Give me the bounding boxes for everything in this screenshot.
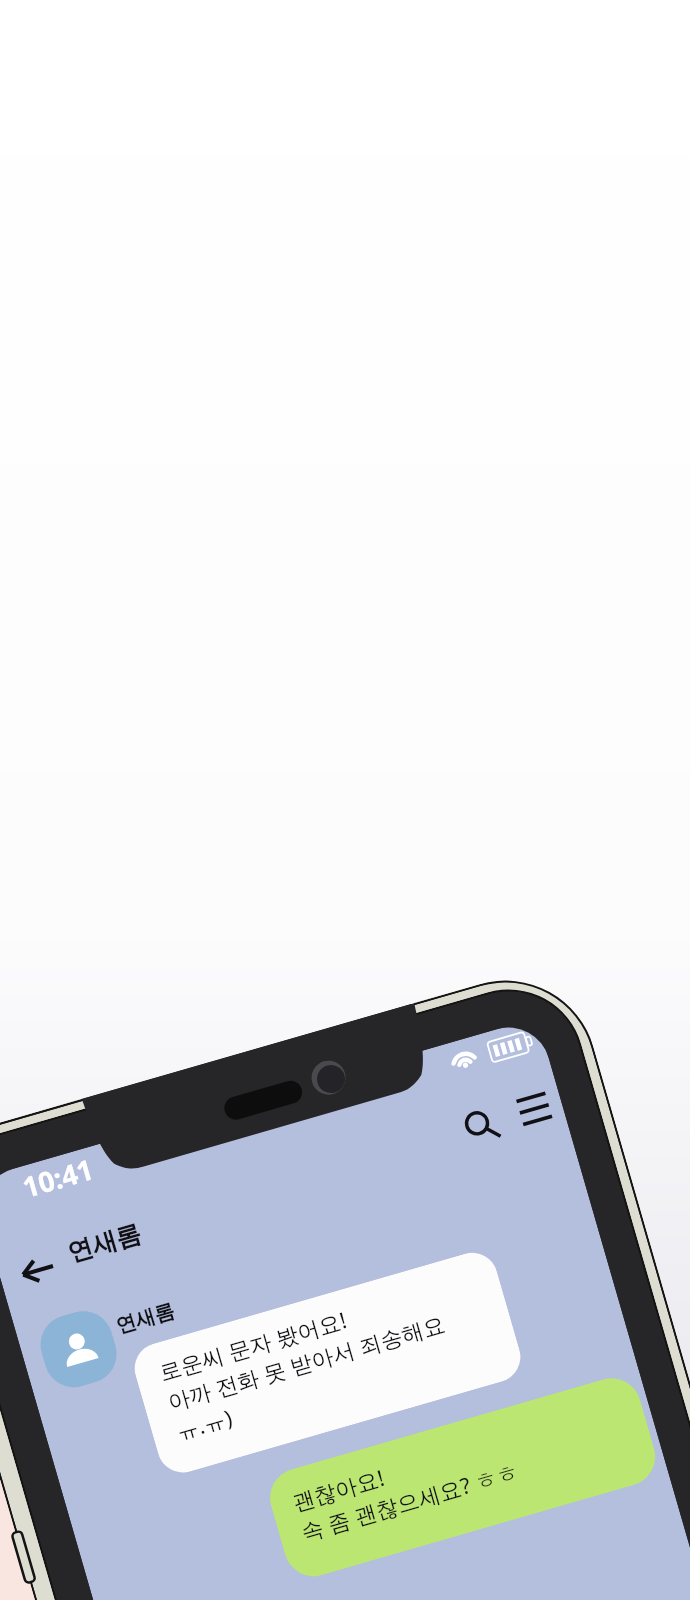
staticText: 연새롬: [113, 1298, 177, 1339]
button[interactable]: Profile photo: [33, 1304, 124, 1394]
staticText: 로운씨 문자 봤어요! 아까 전화 못 받아서 죄송해요 ㅠ.ㅠ): [155, 1278, 457, 1446]
button[interactable]: Search: [463, 1104, 515, 1156]
button[interactable]: Menu: [515, 1088, 563, 1132]
button[interactable]: Back: [13, 1247, 62, 1293]
staticText: 괜찮아요! 속 좀 괜찮으세요? ㅎㅎ: [289, 1425, 522, 1547]
staticText: 연새롬: [64, 1218, 144, 1268]
button[interactable]: 연새롬: [64, 1218, 144, 1268]
staticText: 10:41: [18, 1149, 97, 1206]
button[interactable]: 괜찮아요! 속 좀 괜찮으세요? ㅎㅎ: [263, 1371, 662, 1583]
button[interactable]: 로운씨 문자 봤어요! 아까 전화 못 받아서 죄송해요 ㅠ.ㅠ): [128, 1247, 527, 1479]
